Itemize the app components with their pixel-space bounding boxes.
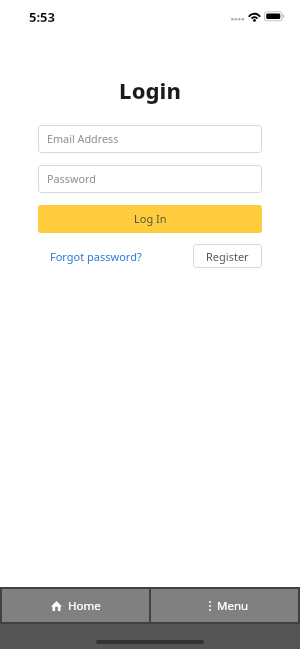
staticText: Register [206,249,249,264]
staticText: Home [68,598,101,614]
button[interactable]: Forgot password? [38,244,154,268]
button[interactable]: Home [2,589,149,622]
button[interactable]: Log In [38,205,262,233]
staticText: 5:53 [29,8,55,26]
staticText: Login [0,75,300,105]
button[interactable]: Password [38,165,262,193]
staticText: Menu [217,598,249,614]
button[interactable]: Menu [151,589,298,622]
button[interactable]: Email Address [38,125,262,153]
staticText: Email Address [47,131,119,146]
staticText: Password [47,171,96,186]
button[interactable]: Register [193,244,262,268]
staticText: Log In [134,211,167,226]
staticText: Forgot password? [50,249,142,264]
